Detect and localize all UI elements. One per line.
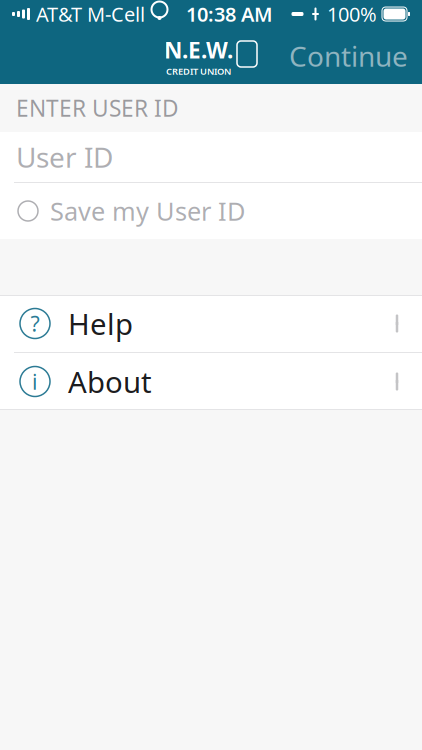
staticText: i [32, 367, 38, 396]
button[interactable]: ? [0, 295, 422, 352]
button[interactable]: i [0, 353, 422, 410]
staticText: Continue [289, 37, 408, 75]
staticText: User ID [16, 138, 113, 176]
button[interactable]: User ID [0, 132, 422, 183]
staticText: CREDIT UNION [166, 65, 231, 77]
staticText: 10:38 AM [186, 1, 273, 27]
staticText: AT&T M-Cell [36, 1, 145, 27]
staticText: Save my User ID [50, 194, 245, 228]
staticText: Help [68, 304, 133, 343]
staticText: 100% [327, 1, 377, 27]
button[interactable]: Continue [275, 29, 422, 83]
button[interactable]: Save my User ID [0, 183, 422, 239]
staticText: N.E.W. [164, 35, 233, 65]
staticText: ENTER USER ID [16, 93, 179, 123]
staticText: About [68, 362, 152, 401]
staticText: ? [30, 309, 39, 338]
